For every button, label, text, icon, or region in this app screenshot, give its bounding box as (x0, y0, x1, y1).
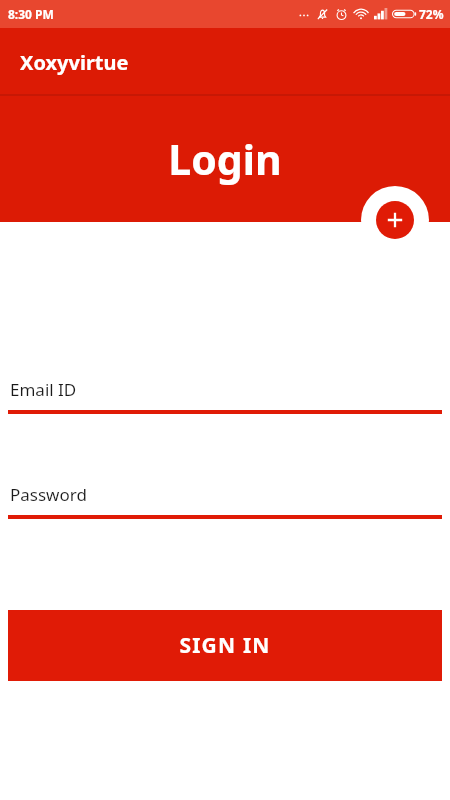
staticText: Password (10, 483, 87, 506)
staticText: 8:30 PM (8, 6, 54, 22)
staticText: 72% (419, 6, 444, 22)
staticText: SIGN IN (179, 631, 271, 660)
button[interactable]: Password (8, 483, 442, 519)
button[interactable]: Add (361, 186, 429, 254)
button[interactable]: Email ID (8, 378, 442, 414)
button[interactable]: SIGN IN (8, 610, 442, 681)
staticText: Email ID (10, 378, 77, 401)
staticText: Login (168, 131, 282, 187)
staticText: Xoxyvirtue (20, 49, 129, 76)
